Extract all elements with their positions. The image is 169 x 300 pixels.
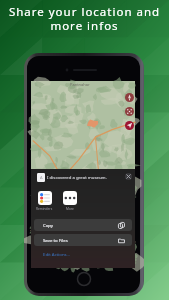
staticText: Pantnahar	[70, 82, 90, 87]
staticText: Save to Files	[43, 237, 68, 243]
staticText: A	[40, 175, 43, 180]
button[interactable]: Map layers	[125, 107, 134, 116]
staticText: Share your location and more infos	[5, 4, 164, 33]
staticText: Reminders	[36, 207, 53, 211]
staticText: More	[66, 207, 74, 211]
button[interactable]: Save to Files	[34, 234, 132, 246]
button[interactable]: Edit Actions…	[43, 251, 70, 257]
button[interactable]: Copy	[34, 219, 132, 231]
button[interactable]: Close	[125, 173, 132, 180]
button[interactable]: Reminders	[36, 191, 53, 211]
staticText: I discovered a great museum.	[47, 174, 107, 180]
button[interactable]: Locate	[125, 93, 134, 102]
staticText: Copy	[43, 222, 54, 228]
button[interactable]: Share location	[125, 121, 134, 130]
button[interactable]: More	[63, 191, 77, 211]
